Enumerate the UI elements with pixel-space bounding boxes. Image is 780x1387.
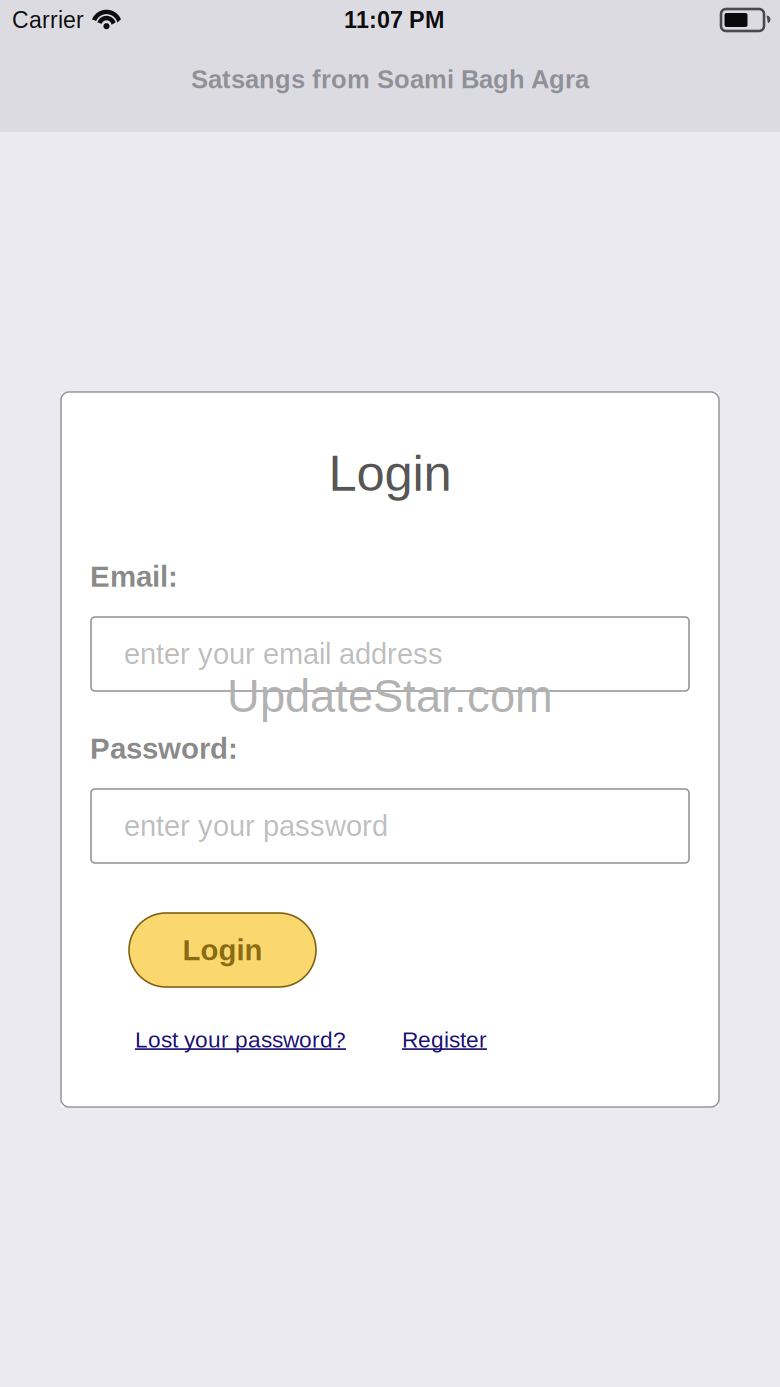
staticText: Login <box>182 934 262 966</box>
staticText: Carrier <box>12 7 84 33</box>
staticText: Lost your password? <box>135 1027 346 1052</box>
button[interactable]: Login <box>129 913 316 987</box>
staticText: enter your email address <box>124 638 443 670</box>
button[interactable]: Register <box>402 1027 487 1052</box>
staticText: Email: <box>90 560 178 593</box>
staticText: Register <box>402 1027 487 1052</box>
staticText: UpdateStar.com <box>227 671 553 722</box>
staticText: 11:07 PM <box>344 7 444 33</box>
staticText: Password: <box>90 732 238 765</box>
staticText: Satsangs from Soami Bagh Agra <box>191 65 589 94</box>
staticText: enter your password <box>124 810 388 842</box>
button[interactable]: Lost your password? <box>135 1027 346 1052</box>
staticText: Login <box>328 445 451 502</box>
